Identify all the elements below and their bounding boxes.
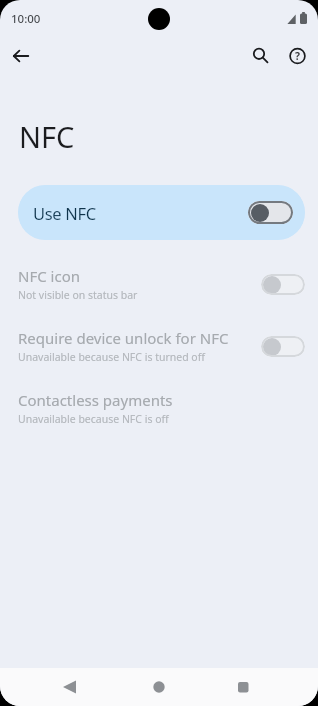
- staticText: NFC icon: [18, 266, 80, 286]
- staticText: NFC: [19, 117, 75, 156]
- button[interactable]: Use NFC: [18, 185, 305, 240]
- button[interactable]: Contactless payments: [18, 377, 305, 439]
- button[interactable]: [241, 35, 279, 73]
- staticText: Unavailable because NFC is turned off: [18, 350, 205, 364]
- staticText: Not visible on status bar: [18, 288, 138, 302]
- staticText: 10:00: [11, 11, 41, 27]
- staticText: ?: [295, 49, 301, 63]
- button[interactable]: [50, 668, 89, 706]
- button[interactable]: [261, 336, 305, 357]
- button[interactable]: [248, 201, 293, 224]
- button[interactable]: [261, 274, 305, 295]
- staticText: Contactless payments: [18, 390, 173, 410]
- button[interactable]: [139, 668, 179, 706]
- button[interactable]: [223, 668, 263, 706]
- button[interactable]: NFC icon: [18, 253, 305, 315]
- staticText: Use NFC: [33, 202, 96, 224]
- button[interactable]: ?: [278, 37, 316, 75]
- staticText: Require device unlock for NFC: [18, 328, 229, 348]
- staticText: Unavailable because NFC is off: [18, 412, 169, 426]
- button[interactable]: [2, 37, 40, 75]
- button[interactable]: Require device unlock for NFC: [18, 315, 305, 377]
